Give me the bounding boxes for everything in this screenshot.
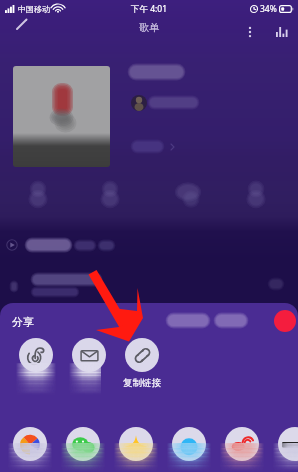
button[interactable]: Playlist action <box>90 180 130 212</box>
button[interactable]: 发私信 <box>62 338 116 389</box>
staticText: 网易云音乐 <box>12 377 60 389</box>
staticText: 发私信 <box>75 377 104 389</box>
staticText: 34% <box>260 3 277 15</box>
button[interactable]: 复制链接 <box>115 338 169 389</box>
button[interactable] <box>0 262 298 302</box>
button[interactable]: 分享 <box>12 315 34 329</box>
button[interactable] <box>128 62 248 84</box>
button[interactable]: Playlist action <box>165 180 205 212</box>
button[interactable]: Share to app <box>13 427 47 461</box>
button[interactable]: 网易云音乐 <box>9 338 63 389</box>
button[interactable]: Share to app <box>66 427 100 461</box>
staticText: 歌单 <box>139 21 159 34</box>
button[interactable]: Share to app <box>278 427 298 461</box>
staticText: 中国移动 <box>18 4 50 14</box>
button[interactable] <box>128 92 218 114</box>
button[interactable]: Share to app <box>225 427 259 461</box>
button[interactable]: Back <box>6 14 38 36</box>
button[interactable]: Playlist action <box>18 180 58 212</box>
staticText: 下午 4:01 <box>131 3 168 15</box>
button[interactable]: More options <box>237 19 263 45</box>
button[interactable]: Close <box>274 310 296 332</box>
button[interactable]: Share to app <box>172 427 206 461</box>
button[interactable]: Playing queue <box>269 19 295 45</box>
button[interactable]: Playlist action <box>235 180 275 212</box>
button[interactable] <box>0 231 298 255</box>
button[interactable]: Share to app <box>119 427 153 461</box>
button[interactable]: Playlist cover <box>13 66 110 167</box>
staticText: 复制链接 <box>123 377 161 389</box>
